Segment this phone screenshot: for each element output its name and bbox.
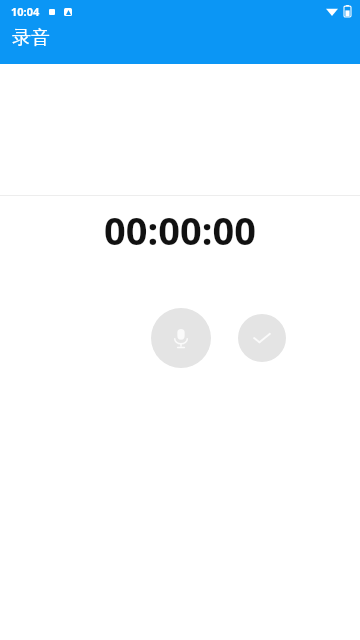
- staticText: 录音: [12, 26, 50, 50]
- staticText: 00:00:00: [0, 204, 360, 256]
- button[interactable]: Done: [238, 314, 286, 362]
- button[interactable]: Record: [151, 308, 211, 368]
- staticText: 10:04: [11, 4, 40, 19]
